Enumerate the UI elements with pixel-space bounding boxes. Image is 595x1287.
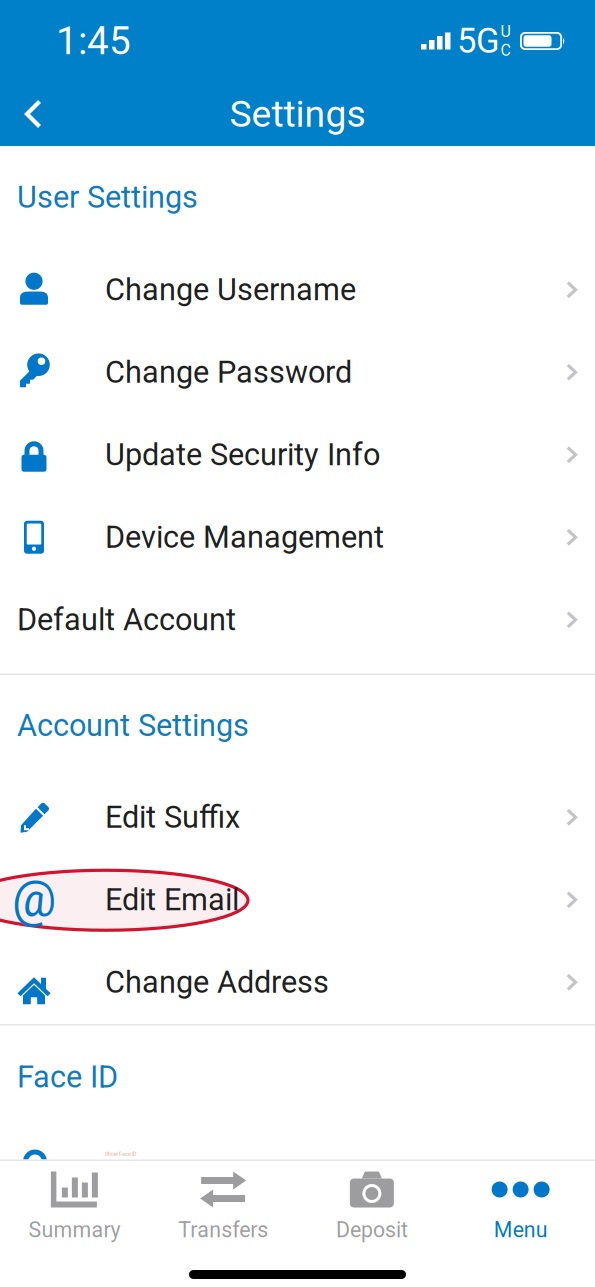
staticText: Change Username [105, 272, 356, 308]
button[interactable]: Default Account [0, 578, 595, 661]
staticText: @ [12, 871, 56, 929]
staticText: Account Settings [17, 707, 249, 743]
staticText: Update Security Info [105, 437, 380, 473]
staticText: U [500, 22, 510, 41]
staticText: Show Face ID [105, 1151, 137, 1157]
button[interactable]: Show Face ID Sign In [0, 1128, 595, 1158]
button[interactable]: Summary [0, 1172, 149, 1242]
button[interactable]: Back [6, 87, 60, 141]
button[interactable]: Transfers [149, 1172, 298, 1242]
staticText: Menu [494, 1217, 548, 1242]
button[interactable]: Change Address [0, 941, 595, 1023]
button[interactable]: Update Security Info [0, 413, 595, 496]
button[interactable]: Menu [446, 1172, 595, 1242]
staticText: User Settings [17, 179, 198, 215]
staticText: 1:45 [56, 18, 131, 64]
staticText: Settings [229, 92, 365, 136]
button[interactable]: @ [0, 858, 595, 941]
staticText: Transfers [178, 1217, 268, 1242]
button[interactable]: Change Password [0, 331, 595, 413]
staticText: 5G [457, 21, 500, 61]
staticText: Edit Suffix [105, 799, 240, 835]
staticText: Summary [28, 1217, 120, 1242]
button[interactable]: Change Username [0, 248, 595, 331]
staticText: Edit Email [105, 882, 239, 918]
staticText: C [500, 41, 510, 60]
staticText: Device Management [105, 519, 384, 555]
staticText: Default Account [17, 602, 236, 638]
staticText: Change Password [105, 354, 352, 390]
staticText: Deposit [336, 1217, 408, 1242]
staticText: Face ID [17, 1059, 118, 1095]
button[interactable]: Deposit [297, 1172, 446, 1242]
staticText: Change Address [105, 964, 329, 1000]
button[interactable]: Edit Suffix [0, 776, 595, 858]
button[interactable]: Device Management [0, 496, 595, 578]
